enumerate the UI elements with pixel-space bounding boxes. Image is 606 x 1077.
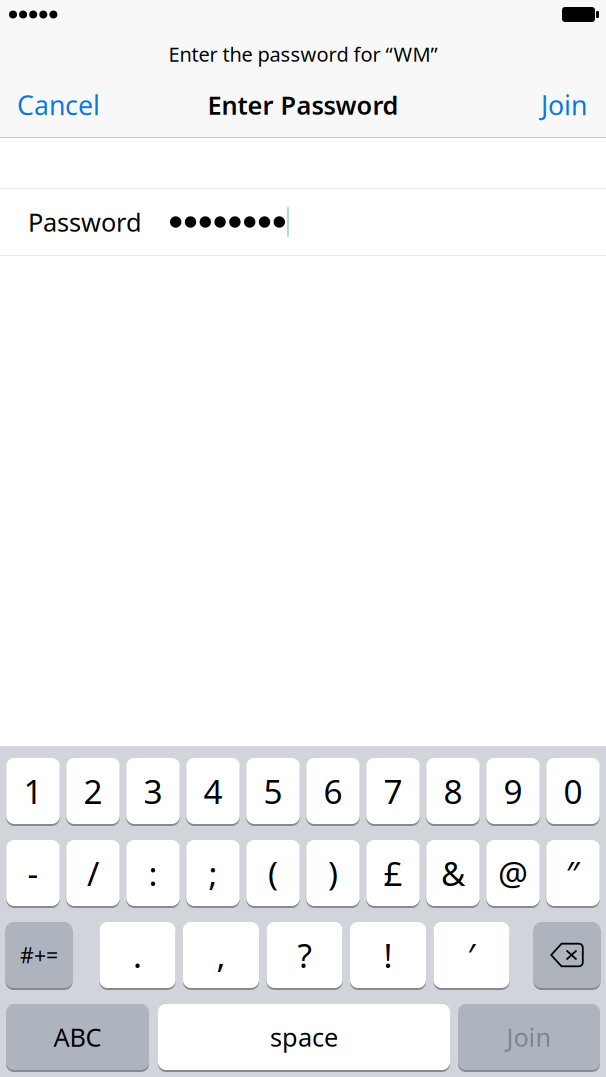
staticText: ? xyxy=(297,933,311,977)
staticText: 0 xyxy=(563,769,582,813)
button[interactable]: #+= xyxy=(5,922,72,990)
staticText: . xyxy=(133,933,142,977)
staticText: Cancel xyxy=(17,87,100,123)
button[interactable]: Join xyxy=(458,1004,600,1072)
staticText: - xyxy=(27,851,38,895)
button[interactable]: Delete xyxy=(533,922,600,990)
button[interactable]: 5 xyxy=(246,758,300,826)
staticText: 8 xyxy=(443,769,462,813)
staticText: 5 xyxy=(263,769,282,813)
button[interactable]: £ xyxy=(366,840,420,908)
staticText: space xyxy=(270,1020,338,1054)
staticText: @ xyxy=(498,851,528,895)
button[interactable]: 7 xyxy=(366,758,420,826)
staticText: #+= xyxy=(20,941,58,969)
staticText: 9 xyxy=(503,769,522,813)
staticText: Password xyxy=(28,205,142,239)
button[interactable]: 0 xyxy=(546,758,600,826)
staticText: Enter the password for “WM” xyxy=(168,41,437,67)
staticText: ) xyxy=(328,851,338,895)
staticText: 1 xyxy=(23,769,42,813)
button[interactable]: : xyxy=(126,840,180,908)
staticText: Enter Password xyxy=(207,88,398,122)
staticText: ABC xyxy=(53,1020,101,1054)
button[interactable]: 1 xyxy=(6,758,60,826)
staticText: & xyxy=(441,851,465,895)
button[interactable]: ′ xyxy=(433,922,509,990)
button[interactable]: . xyxy=(99,922,175,990)
staticText: Join xyxy=(541,87,587,123)
button[interactable]: & xyxy=(426,840,480,908)
staticText: ″ xyxy=(566,851,580,895)
staticText: , xyxy=(216,933,225,977)
button[interactable]: ABC xyxy=(6,1004,149,1072)
button[interactable]: ) xyxy=(306,840,360,908)
button[interactable]: , xyxy=(183,922,259,990)
staticText: £ xyxy=(383,851,402,895)
button[interactable]: 4 xyxy=(186,758,240,826)
button[interactable]: ! xyxy=(350,922,426,990)
staticText: 6 xyxy=(323,769,342,813)
button[interactable]: / xyxy=(66,840,120,908)
button[interactable]: Password xyxy=(0,189,606,255)
staticText: 2 xyxy=(83,769,102,813)
button[interactable]: 2 xyxy=(66,758,120,826)
staticText: 3 xyxy=(143,769,162,813)
button[interactable]: ( xyxy=(246,840,300,908)
button[interactable]: - xyxy=(6,840,60,908)
button[interactable]: ″ xyxy=(546,840,600,908)
button[interactable]: 8 xyxy=(426,758,480,826)
button[interactable]: space xyxy=(158,1004,450,1072)
button[interactable]: Cancel xyxy=(0,79,114,131)
button[interactable]: Join xyxy=(527,79,606,131)
staticText: ! xyxy=(383,933,392,977)
staticText: ′ xyxy=(467,933,475,977)
staticText: ; xyxy=(208,851,217,895)
staticText: 4 xyxy=(203,769,222,813)
button[interactable]: @ xyxy=(486,840,540,908)
button[interactable]: ? xyxy=(266,922,342,990)
staticText: 7 xyxy=(383,769,402,813)
button[interactable]: 3 xyxy=(126,758,180,826)
staticText: / xyxy=(87,851,99,895)
button[interactable]: 6 xyxy=(306,758,360,826)
staticText: : xyxy=(148,851,157,895)
staticText: Join xyxy=(506,1020,551,1054)
button[interactable]: ; xyxy=(186,840,240,908)
staticText: ( xyxy=(268,851,278,895)
button[interactable]: 9 xyxy=(486,758,540,826)
